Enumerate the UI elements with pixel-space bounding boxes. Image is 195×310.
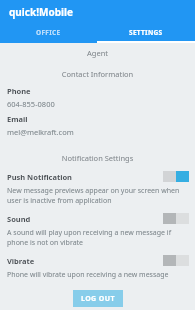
button[interactable]: Push Notification (7, 171, 189, 182)
staticText: Vibrate (7, 256, 163, 266)
button[interactable]: OFFICE (0, 24, 97, 43)
button[interactable]: Toggle off (163, 213, 189, 224)
button[interactable]: Toggle on (163, 171, 189, 182)
button[interactable]: Toggle off (163, 255, 189, 266)
staticText: Agent (0, 48, 195, 58)
staticText: Phone (7, 86, 31, 96)
staticText: Phone will vibrate upon receiving a new … (7, 270, 169, 280)
staticText: Notification Settings (0, 153, 195, 163)
staticText: OFFICE (36, 28, 61, 37)
button[interactable]: Sound (7, 213, 189, 224)
staticText: Email (7, 114, 28, 124)
staticText: SETTINGS (129, 28, 163, 37)
staticText: Sound (7, 214, 163, 224)
staticText: New message previews appear on your scre… (7, 186, 181, 206)
staticText: mel@melkraft.com (7, 127, 74, 137)
staticText: Contact Information (0, 69, 195, 79)
staticText: quick!Mobile (9, 5, 73, 19)
button[interactable]: Vibrate (7, 255, 189, 266)
staticText: Push Notification (7, 172, 163, 182)
button[interactable]: LOG OUT (73, 290, 123, 307)
staticText: 604-855-0800 (7, 99, 55, 109)
staticText: LOG OUT (81, 294, 115, 304)
staticText: A sound will play upon receiving a new m… (7, 228, 181, 248)
button[interactable]: SETTINGS (97, 24, 195, 43)
